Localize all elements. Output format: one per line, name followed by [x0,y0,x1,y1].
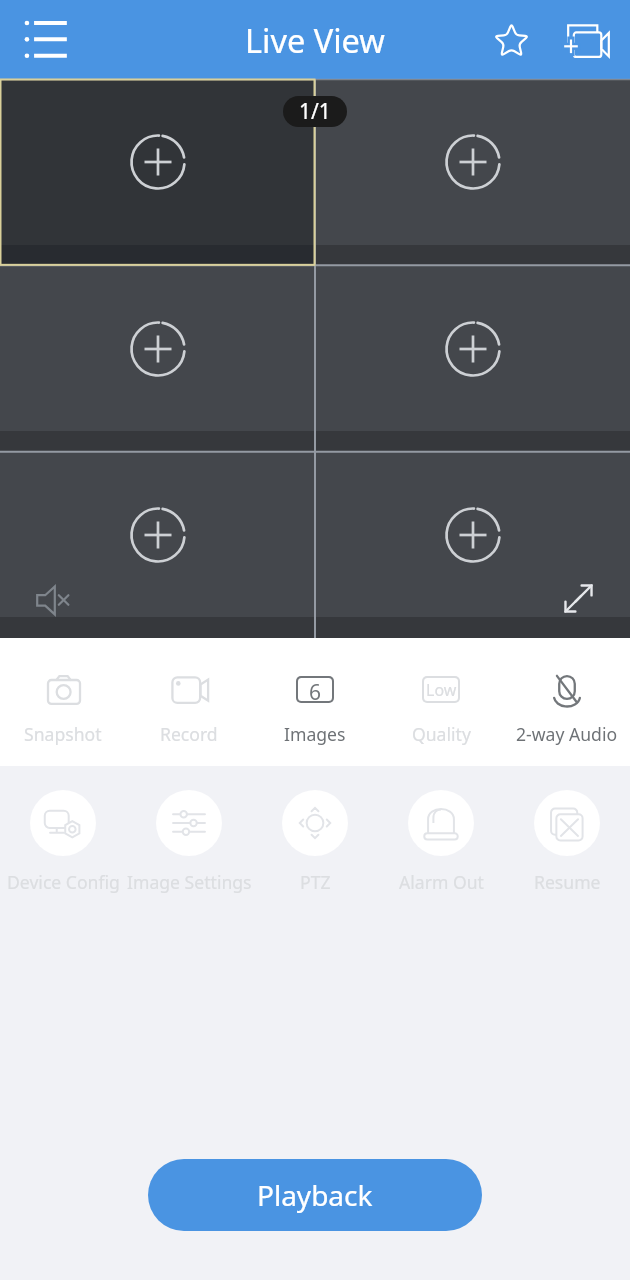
staticText: Snapshot [24,722,102,746]
button[interactable] [315,266,630,452]
button[interactable]: Playback [148,1159,482,1231]
button[interactable] [0,79,315,266]
button[interactable]: Mute [34,580,74,620]
button[interactable]: 6 [252,638,378,766]
button[interactable]: PTZ [252,766,378,906]
button[interactable]: Add camera [555,8,617,70]
staticText: Images [284,722,346,746]
staticText: 1/1 [299,97,331,126]
staticText: Live View [245,18,385,62]
staticText: Low [426,679,457,701]
button[interactable]: 2-way Audio [504,638,630,766]
button[interactable]: Image Settings [126,766,252,906]
staticText: Image Settings [127,870,252,894]
staticText: PTZ [300,870,331,894]
button[interactable]: Menu [14,9,76,71]
button[interactable]: Favorite [480,9,542,71]
button[interactable]: Snapshot [0,638,126,766]
button[interactable]: Low [378,638,504,766]
staticText: 6 [309,678,322,701]
staticText: 2-way Audio [516,722,618,746]
button[interactable]: Mute [0,452,315,638]
button[interactable]: Record [126,638,252,766]
button[interactable]: Alarm Out [378,766,504,906]
button[interactable]: Device Config [0,766,126,906]
staticText: Device Config [7,870,120,894]
button[interactable]: Fullscreen [560,580,596,616]
staticText: Resume [534,870,601,894]
staticText: Alarm Out [399,870,484,894]
button[interactable]: Resume [504,766,630,906]
button[interactable] [0,266,315,452]
button[interactable] [315,79,630,266]
staticText: Quality [412,722,471,746]
button[interactable]: Fullscreen [315,452,630,638]
staticText: Playback [257,1176,373,1214]
staticText: Record [160,722,218,746]
